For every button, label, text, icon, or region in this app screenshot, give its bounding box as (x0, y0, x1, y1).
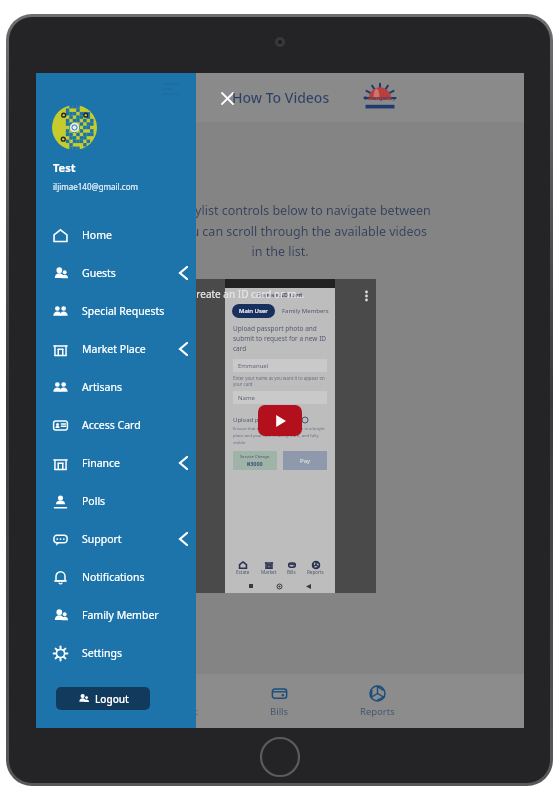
staticText: Family Members (282, 307, 329, 315)
button[interactable]: Menu (163, 81, 178, 96)
button[interactable]: Emergency (358, 76, 402, 120)
staticText: Test (53, 160, 76, 175)
staticText: Logout (95, 692, 129, 706)
button[interactable]: Market (133, 674, 230, 728)
staticText: Emmanuel (238, 362, 269, 370)
staticText: Main User (239, 307, 268, 315)
staticText: Reports (360, 705, 395, 718)
staticText: Enter your name as you want it to appear… (233, 375, 327, 388)
button[interactable]: Guests (36, 254, 196, 292)
staticText: Access Card (82, 418, 141, 432)
button[interactable]: Artisans (36, 368, 196, 406)
staticText: Name (238, 394, 255, 402)
staticText: Estate (71, 705, 99, 718)
button[interactable]: Access Card (36, 406, 196, 444)
button[interactable]: Bills (230, 674, 328, 728)
button[interactable]: Market Place (36, 330, 196, 368)
button[interactable]: Estate (36, 674, 133, 728)
staticText: ₦3000 (247, 460, 263, 467)
staticText: iljimae140@gmail.com (53, 181, 138, 192)
staticText: Settings (82, 646, 122, 660)
staticText: Bills (270, 705, 289, 718)
staticText: Upload passport photo (233, 416, 299, 424)
staticText: Special Requests (82, 304, 165, 318)
staticText: Upload passport photo and submit to requ… (233, 324, 327, 353)
button[interactable]: Logout (56, 687, 150, 710)
staticText: Support (82, 532, 122, 546)
staticText: Reports (307, 569, 324, 575)
button[interactable]: Finance (36, 444, 196, 482)
staticText: Create an ID card or m... (190, 287, 305, 301)
button[interactable]: Special Requests (36, 292, 196, 330)
button[interactable]: Notifications (36, 558, 196, 596)
button[interactable]: Close (214, 85, 240, 111)
staticText: Market (166, 705, 198, 718)
staticText: Ensure that the photo is clear, taken in… (233, 426, 327, 445)
staticText: Bills (287, 569, 296, 575)
button[interactable]: Support (36, 520, 196, 558)
button[interactable]: Family Member (36, 596, 196, 634)
button[interactable]: Polls (36, 482, 196, 520)
staticText: Finance (82, 456, 120, 470)
button[interactable]: Play video (184, 279, 376, 593)
button[interactable]: Home (36, 216, 196, 254)
button[interactable]: Settings (36, 634, 196, 672)
staticText: Home (82, 228, 112, 242)
staticText: Polls (82, 494, 106, 508)
staticText: Pay (300, 457, 311, 465)
staticText: Market (261, 569, 277, 575)
staticText: Market Place (82, 342, 146, 356)
staticText: Emergency (364, 94, 396, 102)
staticText: Service Charge (240, 454, 270, 460)
staticText: How To Videos (232, 88, 330, 107)
button[interactable]: Reports (328, 674, 426, 728)
staticText: Request ID Card (258, 291, 303, 298)
button[interactable]: More options (365, 290, 368, 302)
staticText: Use the playlist controls below to navig… (128, 202, 432, 259)
staticText: Family Member (82, 608, 159, 622)
staticText: Estate (236, 569, 250, 575)
staticText: Artisans (82, 380, 122, 394)
staticText: Notifications (82, 570, 145, 584)
staticText: Guests (82, 266, 116, 280)
